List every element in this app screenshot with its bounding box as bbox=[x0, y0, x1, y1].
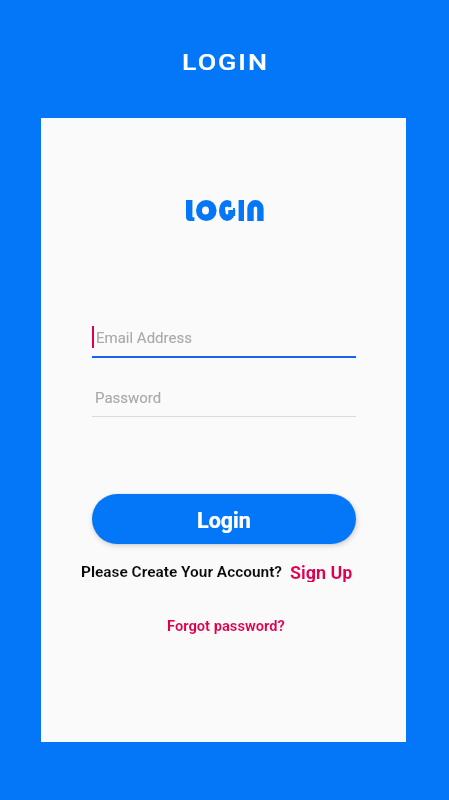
staticText: LOGIN bbox=[182, 50, 270, 76]
staticText: Forgot password? bbox=[167, 617, 285, 634]
staticText: Email Address bbox=[96, 329, 192, 347]
staticText: Login bbox=[197, 508, 251, 533]
button[interactable]: Forgot password? bbox=[167, 617, 285, 634]
button[interactable]: Email Address bbox=[92, 317, 356, 358]
button[interactable]: Sign Up bbox=[290, 562, 353, 582]
button[interactable]: Login bbox=[92, 494, 356, 544]
button[interactable]: Password bbox=[92, 377, 356, 417]
staticText: Please Create Your Account? bbox=[81, 563, 283, 581]
staticText: Sign Up bbox=[290, 562, 353, 582]
staticText: Password bbox=[95, 389, 162, 407]
